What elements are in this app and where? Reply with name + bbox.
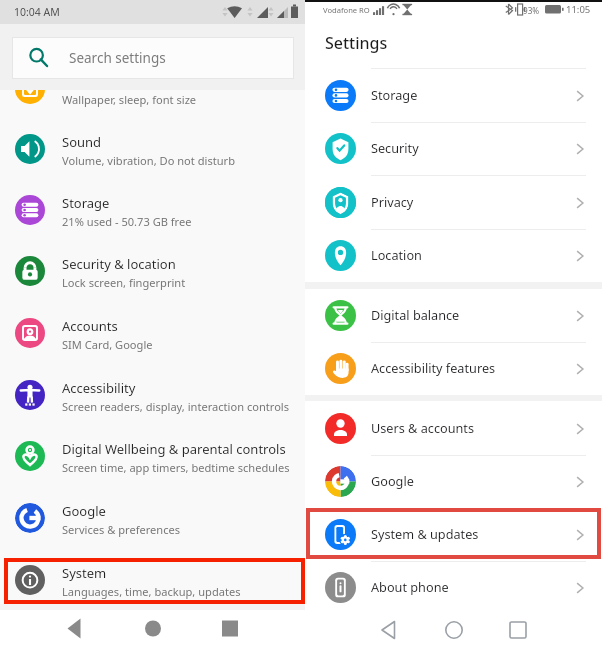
staticText: Location	[371, 246, 422, 263]
staticText: Services & preferences	[62, 522, 181, 537]
button[interactable]: Back	[54, 610, 98, 648]
staticText: Digital balance	[371, 306, 460, 323]
staticText: Google	[371, 472, 414, 489]
button[interactable]: Google	[0, 488, 305, 548]
button[interactable]: Home	[432, 612, 476, 648]
staticText: Screen readers, display, interaction con…	[62, 399, 290, 414]
button[interactable]: System	[0, 550, 305, 610]
staticText: Lock screen, fingerprint	[62, 275, 186, 290]
staticText: 10:04 AM	[14, 5, 60, 19]
button[interactable]: Home	[131, 610, 175, 648]
staticText: 21% used - 50.73 GB free	[62, 214, 192, 229]
button[interactable]: Location	[305, 229, 602, 282]
button[interactable]: Recent apps	[496, 612, 540, 648]
button[interactable]: About phone	[305, 561, 602, 614]
button[interactable]: Recent apps	[208, 610, 252, 648]
staticText: Storage	[62, 194, 110, 212]
staticText: Users & accounts	[371, 419, 475, 436]
button[interactable]: Security	[305, 122, 602, 175]
button[interactable]: Storage	[0, 180, 305, 240]
staticText: Volume, vibration, Do not disturb	[62, 153, 235, 168]
staticText: Vodafone RO	[323, 5, 370, 15]
button[interactable]: Privacy	[305, 176, 602, 229]
button[interactable]: Search settings	[12, 37, 294, 79]
staticText: System & updates	[371, 525, 479, 542]
button[interactable]: Accessibility	[0, 365, 305, 425]
staticText: Languages, time, backup, updates	[62, 584, 241, 599]
button[interactable]: Digital Wellbeing & parental controls	[0, 426, 305, 486]
staticText: 11:05	[566, 3, 591, 16]
button[interactable]: Sound	[0, 119, 305, 179]
staticText: Privacy	[371, 193, 414, 210]
button[interactable]: Storage	[305, 69, 602, 122]
staticText: Wallpaper, sleep, font size	[62, 92, 197, 107]
staticText: Accessibility	[62, 379, 136, 397]
button[interactable]: Accounts	[0, 303, 305, 363]
button[interactable]: System & updates	[305, 508, 602, 561]
staticText: Security & location	[62, 255, 176, 273]
staticText: Google	[62, 502, 106, 520]
button[interactable]: Security & location	[0, 241, 305, 301]
staticText: About phone	[371, 578, 449, 595]
button[interactable]: Digital balance	[305, 289, 602, 342]
staticText: Sound	[62, 133, 102, 151]
staticText: Settings	[325, 32, 388, 54]
staticText: Storage	[371, 86, 418, 103]
staticText: 93%	[523, 5, 540, 16]
staticText: Accounts	[62, 317, 118, 335]
button[interactable]: Accessibility features	[305, 342, 602, 395]
staticText: SIM Card, Google	[62, 337, 153, 352]
staticText: Digital Wellbeing & parental controls	[62, 440, 286, 458]
button[interactable]: Users & accounts	[305, 402, 602, 455]
staticText: Search settings	[69, 49, 166, 67]
button[interactable]: Google	[305, 455, 602, 508]
staticText: Screen time, app timers, bedtime schedul…	[62, 460, 290, 475]
button[interactable]: Back	[368, 612, 412, 648]
staticText: Security	[371, 139, 419, 156]
staticText: Accessibility features	[371, 359, 496, 376]
staticText: System	[62, 564, 107, 582]
